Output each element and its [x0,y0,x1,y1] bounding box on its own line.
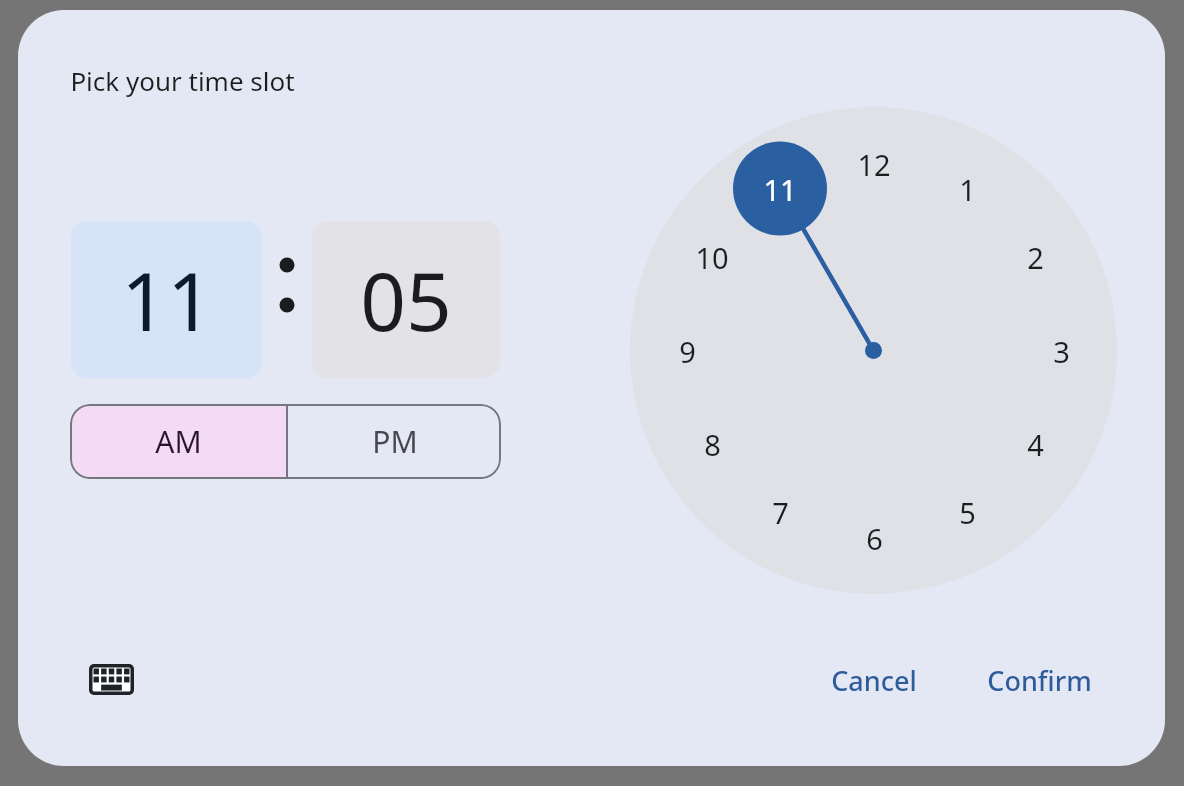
staticText: AM [155,421,202,462]
button[interactable]: 9 [655,324,719,378]
staticText: Cancel [831,662,917,699]
staticText: 05 [360,245,452,354]
staticText: 10 [695,238,729,277]
button[interactable]: 8 [680,417,744,471]
staticText: 1 [959,170,976,209]
button[interactable]: 12 [842,137,906,191]
staticText: 11 [763,170,797,209]
button[interactable]: 4 [1003,417,1067,471]
staticText: 11 [121,245,213,354]
button[interactable]: Switch to keyboard input [75,651,147,707]
staticText: 4 [1027,425,1044,464]
staticText: 2 [1027,238,1044,277]
button[interactable]: 1 [935,162,999,216]
staticText: 8 [704,425,721,464]
staticText: Confirm [987,662,1092,699]
button[interactable]: 3 [1029,324,1093,378]
staticText: PM [372,421,418,462]
button[interactable]: 11 [71,221,262,378]
staticText: 9 [679,332,696,371]
button[interactable]: 7 [748,485,812,539]
staticText: 7 [772,493,789,532]
button[interactable]: 5 [935,485,999,539]
staticText: 6 [866,519,883,558]
button[interactable]: Confirm [968,652,1110,708]
button[interactable]: 10 [680,230,744,284]
button[interactable]: Cancel [810,652,938,708]
button[interactable]: 05 [312,221,500,378]
button[interactable]: 6 [842,511,906,565]
button[interactable]: 11 [748,162,812,216]
button[interactable]: AM [70,404,286,479]
staticText: 12 [857,145,891,184]
button[interactable]: PM [288,404,501,479]
staticText: 5 [959,493,976,532]
button[interactable]: 2 [1003,230,1067,284]
staticText: Pick your time slot [70,63,295,98]
staticText: 3 [1053,332,1070,371]
